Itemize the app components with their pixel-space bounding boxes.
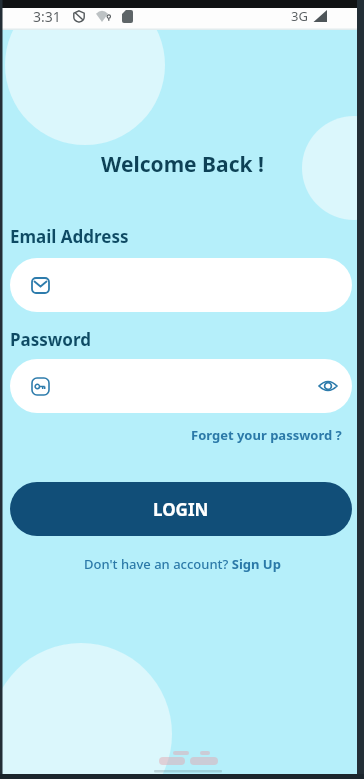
button[interactable] [318, 376, 338, 396]
staticText: 3G [291, 7, 308, 25]
button[interactable] [10, 258, 352, 312]
staticText: Welcome Back ! [101, 150, 264, 179]
staticText: Don't have an account? Sign Up [84, 555, 281, 573]
staticText: LOGIN [153, 498, 209, 521]
staticText: Email Address [10, 225, 129, 248]
button[interactable]: LOGIN [10, 482, 352, 536]
button[interactable]: Don't have an account? Sign Up [84, 555, 281, 573]
button[interactable]: Forget your password ? [191, 426, 342, 444]
staticText: Password [10, 328, 91, 351]
staticText: Forget your password ? [191, 426, 342, 444]
button[interactable] [10, 359, 352, 413]
staticText: 3:31 [33, 7, 61, 26]
